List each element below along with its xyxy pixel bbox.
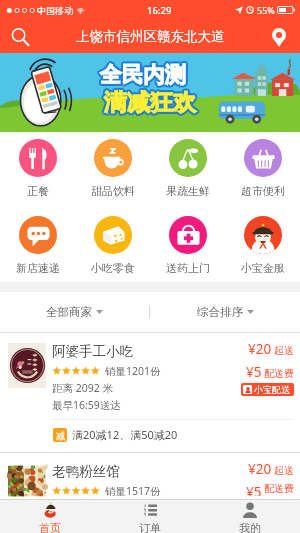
staticText: 甜品饮料 [91, 184, 135, 198]
staticText: 新店速递 [16, 261, 60, 275]
staticText: 我的 [239, 521, 261, 533]
staticText: 送药上门 [166, 261, 210, 275]
button[interactable]: 甜品饮料 [75, 132, 150, 208]
staticText: 16:29 [147, 4, 172, 17]
staticText: 全民内测 [100, 63, 186, 90]
staticText: 配送费 [264, 482, 294, 495]
button[interactable]: 老鸭粉丝馆 [0, 453, 300, 499]
staticText: 首页 [39, 521, 61, 533]
staticText: 最早16:59送达 [52, 398, 121, 412]
staticText: 销量1517份 [105, 484, 161, 498]
staticText: 销量1201份 [105, 364, 161, 378]
staticText: 满减狂欢 [105, 90, 197, 119]
staticText: 上饶市信州区赣东北大道 [76, 28, 225, 45]
staticText: 老鸭粉丝馆 [52, 463, 120, 480]
staticText: 满减狂欢 [102, 87, 194, 116]
button[interactable]: 订单 [100, 500, 200, 533]
staticText: 全民内测 [101, 59, 187, 86]
button[interactable]: 全部商家 [0, 292, 149, 332]
staticText: 满减狂欢 [106, 89, 198, 118]
staticText: 全民内测 [98, 60, 184, 87]
staticText: 小宝金服 [241, 261, 285, 275]
button[interactable]: 新店速递 [0, 208, 75, 282]
staticText: 起送 [274, 464, 294, 477]
button[interactable]: 首页 [0, 500, 100, 533]
staticText: 全民内测 [101, 63, 187, 90]
staticText: 满减狂欢 [106, 88, 198, 117]
staticText: 满减狂欢 [103, 90, 195, 119]
button[interactable]: 果蔬生鲜 [150, 132, 225, 208]
staticText: 全民内测 [102, 60, 188, 87]
staticText: ¥5 [246, 363, 262, 381]
staticText: 全民内测 [102, 62, 188, 89]
staticText: 全民内测 [102, 61, 188, 88]
staticText: 综合排序 [197, 305, 243, 319]
staticText: 全民内测 [99, 63, 185, 90]
button[interactable]: 超市便利 [225, 132, 300, 208]
staticText: ¥5 [246, 483, 262, 496]
button[interactable]: 送药上门 [150, 208, 225, 282]
staticText: 满减狂欢 [104, 86, 196, 115]
staticText: 全民内测 [100, 59, 186, 86]
button[interactable]: 我的 [200, 500, 300, 533]
staticText: 阿婆手工小吃 [52, 343, 133, 360]
staticText: 满减狂欢 [102, 89, 194, 118]
staticText: 55% [257, 4, 275, 16]
staticText: 配送费 [264, 367, 294, 380]
staticText: 满减狂欢 [105, 86, 197, 115]
button[interactable]: 正餐 [0, 132, 75, 208]
staticText: 满减狂欢 [104, 88, 196, 117]
staticText: 全民内测 [100, 61, 186, 88]
staticText: 超市便利 [241, 184, 285, 198]
staticText: 正餐 [27, 184, 49, 198]
button[interactable]: Search [5, 22, 35, 52]
staticText: 满减狂欢 [103, 86, 195, 115]
staticText: 起送 [274, 344, 294, 357]
staticText: 小宝配送 [254, 384, 290, 395]
staticText: 满减狂欢 [102, 88, 194, 117]
staticText: 距离 2092 米 [52, 381, 113, 395]
button[interactable]: Location [264, 22, 294, 52]
staticText: 满减狂欢 [104, 90, 196, 119]
button[interactable]: 小吃零食 [75, 208, 150, 282]
staticText: 减 [56, 430, 65, 441]
staticText: ¥20 [248, 460, 272, 478]
staticText: 全民内测 [99, 59, 185, 86]
staticText: 订单 [139, 521, 161, 533]
staticText: 小吃零食 [91, 261, 135, 275]
button[interactable]: 阿婆手工小吃 [0, 333, 300, 453]
button[interactable]: 综合排序 [150, 292, 300, 332]
staticText: 果蔬生鲜 [166, 184, 210, 198]
staticText: ¥20 [248, 340, 272, 358]
staticText: 满减狂欢 [106, 87, 198, 116]
staticText: 全民内测 [98, 61, 184, 88]
staticText: 满20减12、满50减20 [72, 427, 178, 442]
staticText: 全部商家 [46, 305, 92, 319]
staticText: 全民内测 [98, 62, 184, 89]
button[interactable]: 小宝金服 [225, 208, 300, 282]
staticText: 中国移动 [37, 5, 73, 16]
